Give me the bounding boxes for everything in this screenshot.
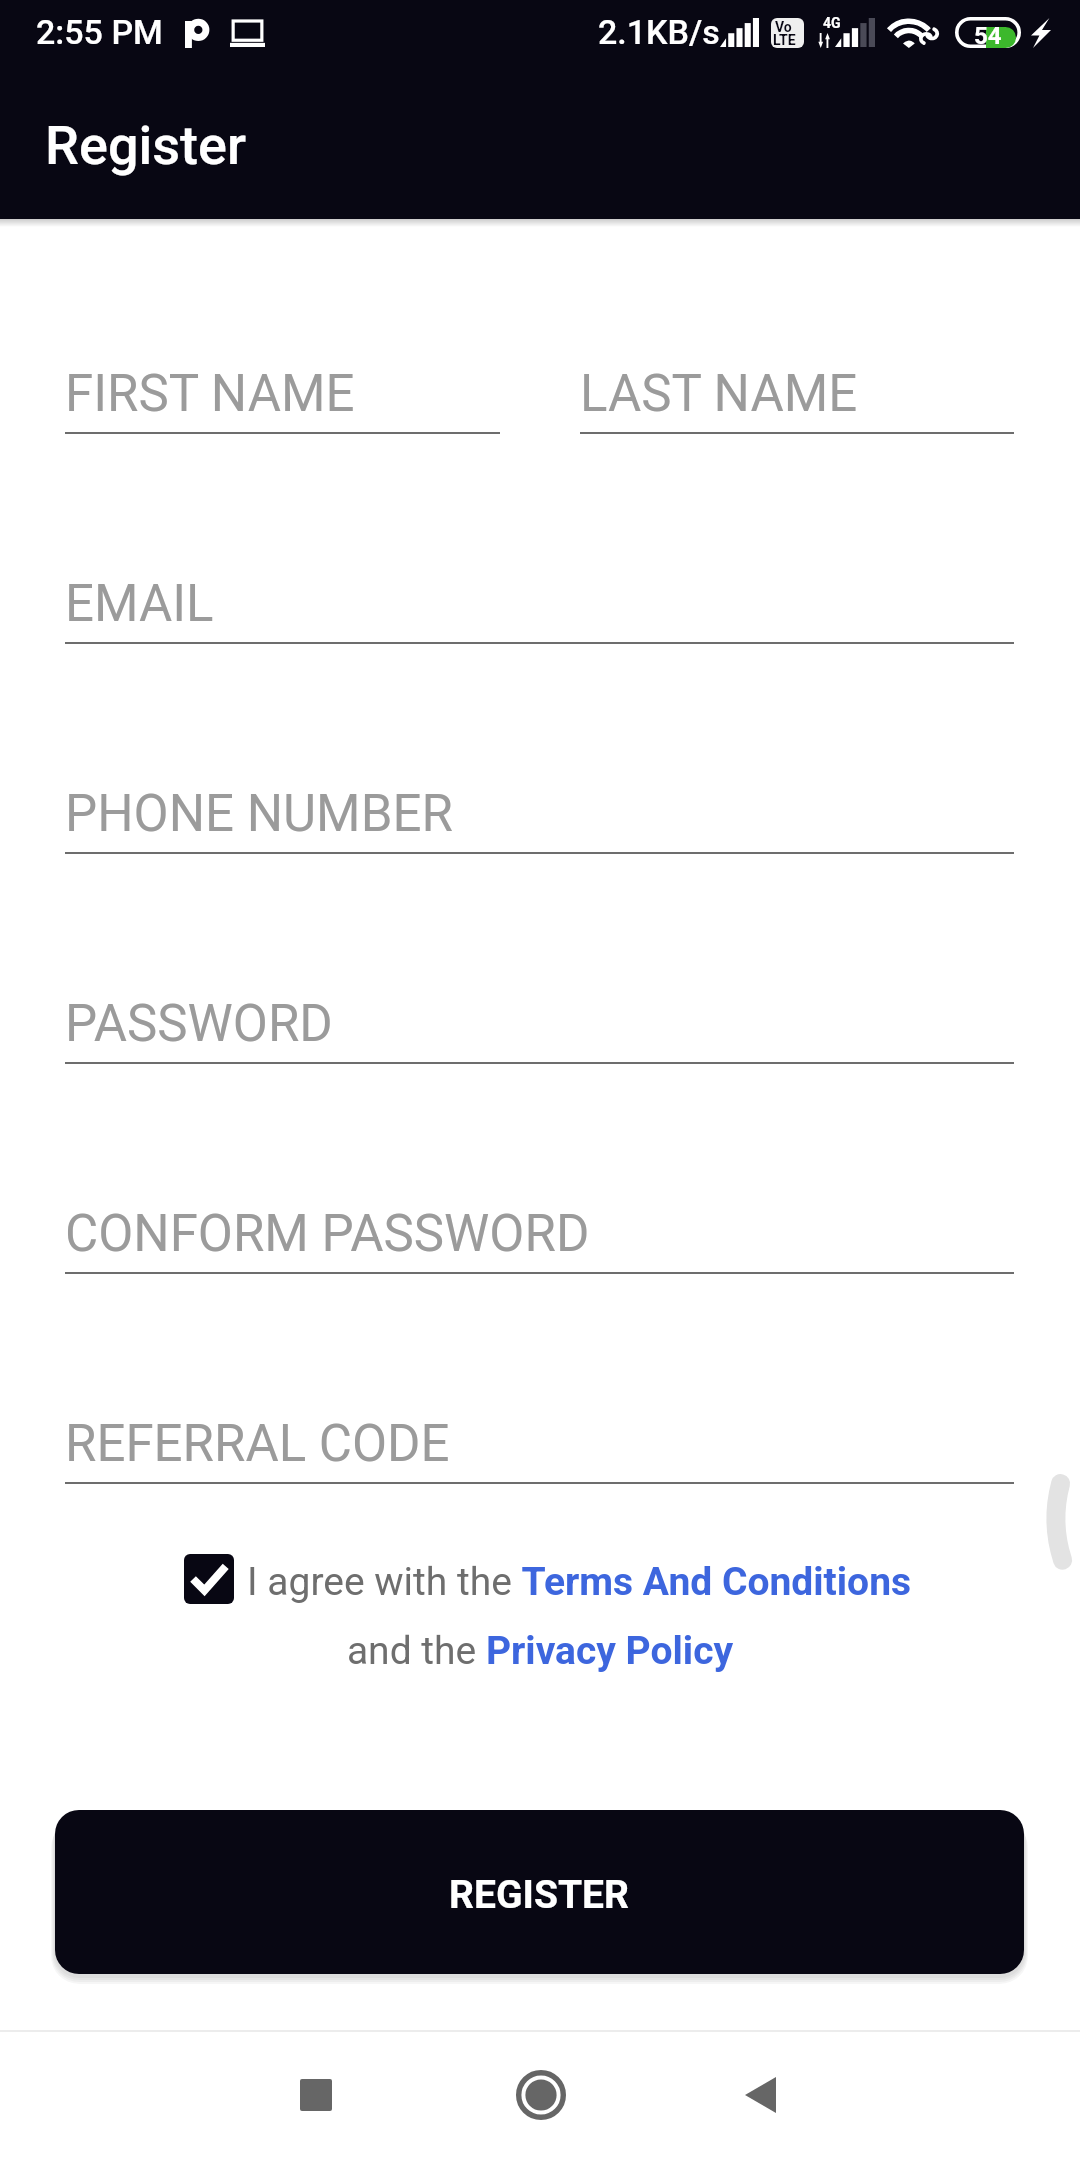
button[interactable]: I agree with the Terms And Conditions (247, 1559, 912, 1605)
staticText: 54 (974, 22, 1002, 50)
staticText: LTE (773, 32, 796, 48)
staticText: PHONE NUMBER (65, 784, 453, 844)
staticText: Register (45, 114, 247, 177)
staticText: EMAIL (65, 574, 214, 634)
staticText: 4G (823, 15, 841, 31)
button[interactable]: EMAIL (65, 564, 1014, 644)
staticText: LAST NAME (580, 364, 858, 424)
staticText: PASSWORD (65, 994, 333, 1054)
button[interactable]: PASSWORD (65, 984, 1014, 1064)
button[interactable]: FIRST NAME (65, 354, 500, 434)
button[interactable] (184, 1554, 234, 1604)
button[interactable]: Recent apps (266, 2046, 366, 2146)
staticText: REFERRAL CODE (65, 1414, 450, 1474)
staticText: CONFORM PASSWORD (65, 1204, 590, 1264)
button[interactable]: CONFORM PASSWORD (65, 1194, 1014, 1274)
button[interactable]: LAST NAME (580, 354, 1014, 434)
staticText: 2:55 PM (36, 12, 163, 52)
button[interactable]: and the Privacy Policy (0, 1628, 1080, 1674)
button[interactable]: REFERRAL CODE (65, 1404, 1014, 1484)
staticText: 2.1KB/s (598, 12, 720, 52)
button[interactable]: REGISTER (55, 1810, 1024, 1974)
staticText: Vo (775, 19, 792, 35)
staticText: REGISTER (449, 1872, 630, 1918)
button[interactable]: Back (711, 2046, 811, 2146)
button[interactable]: Home (491, 2046, 591, 2146)
button[interactable]: PHONE NUMBER (65, 774, 1014, 854)
staticText: FIRST NAME (65, 364, 355, 424)
